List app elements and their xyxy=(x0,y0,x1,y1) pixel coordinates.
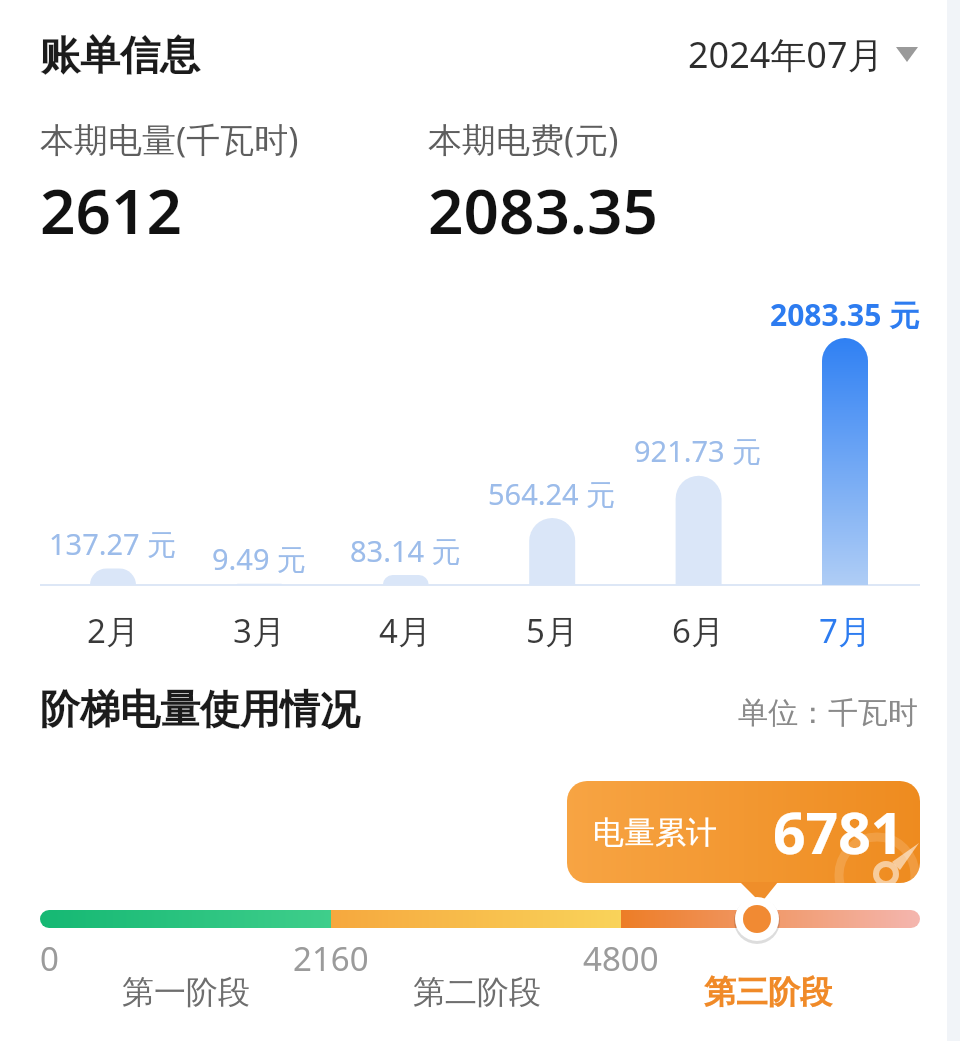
staticText: 本期电费(元) xyxy=(428,116,619,162)
button[interactable]: 电量累计 xyxy=(567,781,920,883)
staticText: 137.27 元 xyxy=(49,524,177,564)
staticText: 2024年07月 xyxy=(688,30,884,79)
staticText: 本期电量(千瓦时) xyxy=(40,116,299,162)
staticText: 2月 xyxy=(87,608,139,653)
button[interactable]: 2024年07月 xyxy=(688,30,918,79)
staticText: 2083.35 元 xyxy=(770,294,920,335)
staticText: 第二阶段 xyxy=(413,972,541,1012)
staticText: 电量累计 xyxy=(593,813,717,852)
staticText: 3月 xyxy=(233,608,285,653)
staticText: 6月 xyxy=(672,608,724,653)
staticText: 4800 xyxy=(583,936,659,981)
staticText: 9.49 元 xyxy=(212,539,307,579)
staticText: 单位：千瓦时 xyxy=(738,694,918,732)
staticText: 921.73 元 xyxy=(634,431,762,471)
staticText: 阶梯电量使用情况 xyxy=(40,684,360,734)
staticText: 第三阶段 xyxy=(704,972,832,1012)
staticText: 6781 xyxy=(773,793,904,871)
staticText: 4月 xyxy=(379,608,431,653)
staticText: 0 xyxy=(40,936,59,981)
staticText: 2083.35 xyxy=(428,168,658,252)
staticText: 83.14 元 xyxy=(350,531,461,571)
staticText: 564.24 元 xyxy=(488,474,616,514)
staticText: 2160 xyxy=(293,936,369,981)
staticText: 2612 xyxy=(40,168,182,252)
staticText: 账单信息 xyxy=(40,30,200,80)
staticText: 7月 xyxy=(819,608,871,653)
staticText: 5月 xyxy=(526,608,578,653)
staticText: 第一阶段 xyxy=(122,972,250,1012)
